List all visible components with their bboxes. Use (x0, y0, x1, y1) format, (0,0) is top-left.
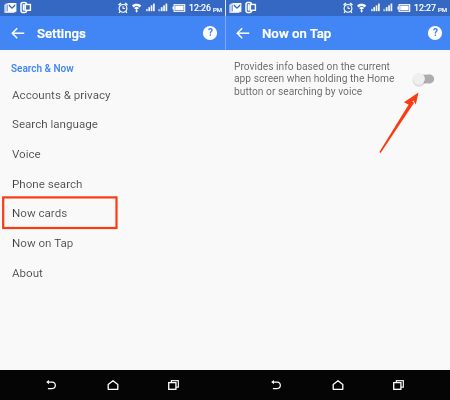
staticText: Now on Tap (12, 236, 74, 250)
button[interactable]: Search language (0, 109, 225, 139)
staticText: 12:26 (189, 3, 211, 13)
staticText: Search & Now (11, 63, 74, 75)
button[interactable]: Back (37, 370, 65, 400)
button[interactable]: Accounts & privacy (0, 80, 225, 110)
staticText: Search language (12, 117, 98, 131)
button[interactable]: Home (99, 370, 127, 400)
staticText: ? (433, 27, 438, 39)
button[interactable]: About (0, 258, 225, 288)
staticText: Now on Tap (262, 26, 332, 41)
button[interactable]: Help (421, 19, 449, 47)
staticText: Voice (12, 147, 41, 161)
button[interactable]: Now cards (0, 198, 225, 228)
button[interactable]: Now on Tap (0, 228, 225, 258)
button[interactable]: Help (196, 19, 224, 47)
button[interactable]: Recent apps (160, 370, 188, 400)
staticText: About (12, 266, 43, 280)
button[interactable]: Now on Tap switch, off (404, 64, 434, 94)
button[interactable]: Home (324, 370, 352, 400)
staticText: PM (213, 6, 223, 13)
staticText: Settings (37, 26, 86, 41)
staticText: PM (438, 6, 448, 13)
button[interactable]: Recent apps (385, 370, 413, 400)
staticText: Provides info based on the current app s… (234, 60, 397, 97)
staticText: Accounts & privacy (12, 88, 111, 102)
staticText: 12:27 (414, 3, 436, 13)
button[interactable]: Phone search (0, 169, 225, 199)
staticText: Phone search (12, 177, 83, 191)
staticText: ? (208, 27, 213, 39)
staticText: Now cards (12, 206, 68, 220)
button[interactable]: Back (262, 370, 290, 400)
button[interactable]: Navigate up (2, 17, 34, 49)
button[interactable]: Navigate up (227, 17, 259, 49)
button[interactable]: Voice (0, 139, 225, 169)
